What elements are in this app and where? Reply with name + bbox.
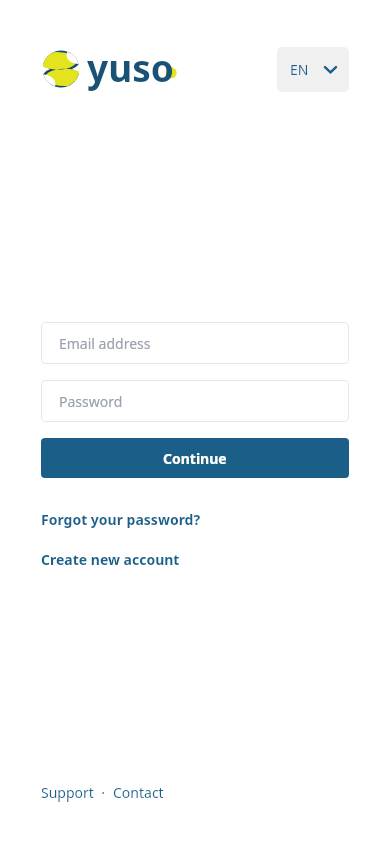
staticText: Support <box>41 783 94 802</box>
button[interactable]: Select language <box>277 47 349 92</box>
staticText: yuso <box>87 42 174 92</box>
staticText: EN <box>290 60 309 79</box>
staticText: Contact <box>113 783 164 802</box>
button[interactable]: Create new account <box>41 550 180 569</box>
staticText: Create new account <box>41 550 180 569</box>
other: Yuso logo <box>41 49 81 89</box>
button[interactable]: Email address <box>41 322 349 364</box>
staticText: Email address <box>59 334 151 353</box>
button[interactable]: Password <box>41 380 349 422</box>
staticText: Forgot your password? <box>41 510 201 529</box>
staticText: · <box>94 783 113 802</box>
button[interactable]: Forgot your password? <box>41 510 201 529</box>
button[interactable]: Support <box>41 783 94 802</box>
button[interactable]: Contact <box>113 783 164 802</box>
button[interactable]: Continue <box>41 438 349 478</box>
staticText: Continue <box>163 449 227 468</box>
staticText: Password <box>59 392 123 411</box>
